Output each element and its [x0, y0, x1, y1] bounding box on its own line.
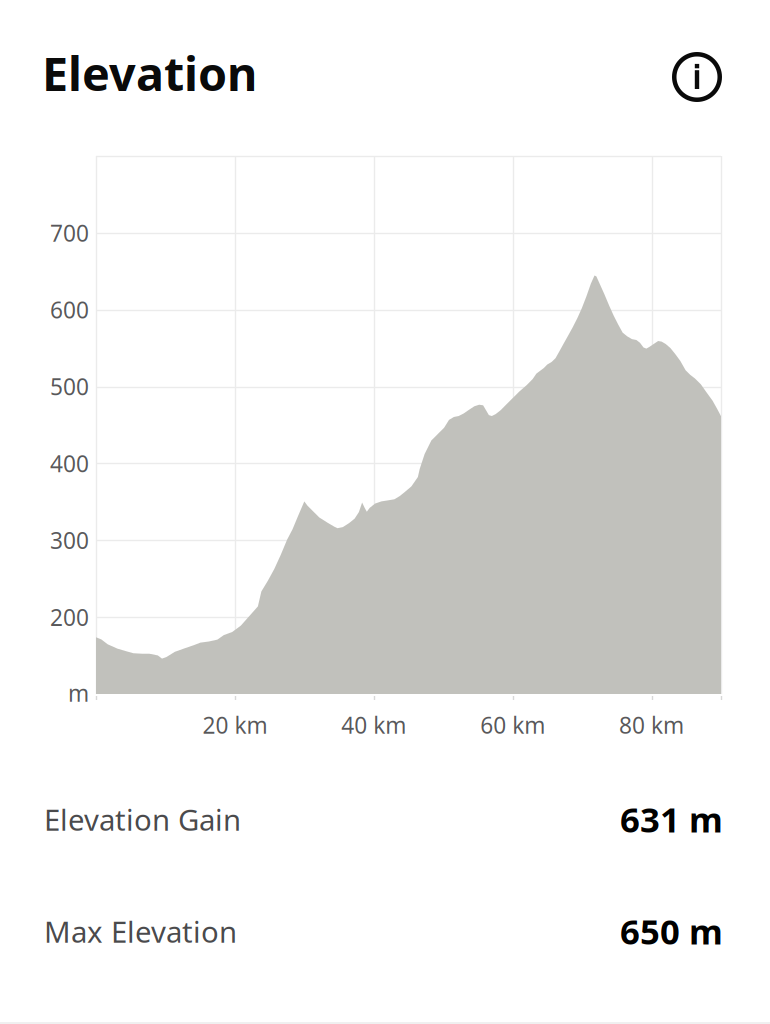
staticText: Elevation Gain [44, 800, 241, 839]
staticText: Elevation [42, 42, 257, 104]
staticText: 700 [50, 218, 89, 248]
staticText: 400 [50, 448, 89, 478]
staticText: 650 m [620, 908, 723, 954]
staticText: Max Elevation [44, 912, 237, 951]
staticText: 600 [50, 295, 89, 325]
button[interactable]: Information [663, 43, 731, 111]
staticText: 80 km [619, 710, 684, 740]
staticText: 300 [50, 525, 89, 555]
staticText: m [68, 678, 89, 708]
staticText: 20 km [202, 710, 267, 740]
staticText: 200 [50, 602, 89, 632]
staticText: 60 km [480, 710, 545, 740]
staticText: 500 [50, 371, 89, 402]
staticText: 40 km [341, 710, 406, 740]
staticText: 631 m [620, 796, 723, 842]
